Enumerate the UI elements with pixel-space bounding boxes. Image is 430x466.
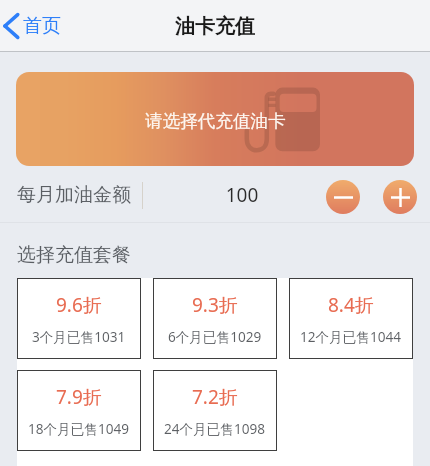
staticText: 7.2折 [192,384,238,410]
staticText: 8.4折 [328,292,374,318]
button[interactable]: 请选择代充值油卡 [16,72,414,166]
button[interactable]: 9.3折 [153,278,277,359]
staticText: 7.9折 [56,384,102,410]
button[interactable]: 7.9折 [17,370,141,451]
staticText: 6个月已售1029 [168,327,262,346]
button[interactable]: Decrease [326,180,360,214]
staticText: 24个月已售1098 [164,419,266,438]
staticText: 3个月已售1031 [32,327,126,346]
staticText: 选择充值套餐 [17,243,131,267]
staticText: 18个月已售1049 [28,419,130,438]
staticText: 请选择代充值油卡 [145,110,286,132]
button[interactable]: 首页 [3,13,67,39]
button[interactable]: 每月加油金额 [17,183,131,207]
staticText: 12个月已售1044 [300,327,402,346]
staticText: 9.3折 [192,292,238,318]
staticText: 首页 [23,14,61,38]
staticText: 100 [192,182,292,208]
button[interactable]: 7.2折 [153,370,277,451]
staticText: 9.6折 [56,292,102,318]
button[interactable]: 9.6折 [17,278,141,359]
staticText: 油卡充值 [175,14,255,39]
button[interactable]: 8.4折 [289,278,413,359]
button[interactable]: Increase [383,180,417,214]
